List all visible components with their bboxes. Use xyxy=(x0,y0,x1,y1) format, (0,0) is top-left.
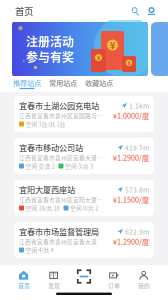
button[interactable]: 注册活动 xyxy=(12,20,148,78)
staticText: ¥1.1500/度 xyxy=(113,196,149,203)
staticText: 宜春市土湖公园充电站 xyxy=(19,101,99,110)
staticText: ¥ xyxy=(110,40,115,50)
staticText: ¥1.0000/度 xyxy=(113,112,149,119)
staticText: 宜春市移动公司站 xyxy=(19,143,83,152)
button[interactable]: 宜阳大厦西座站 xyxy=(14,180,154,216)
staticText: ¥1.2900/度 xyxy=(113,238,149,245)
button[interactable]: 搜索 xyxy=(131,6,140,15)
staticText: 常用站点 xyxy=(49,79,77,86)
staticText: 江西省宜春市袁州区宜园路与锦绣大道交叉口 xyxy=(19,112,106,118)
staticText: 江西省宜春市袁州区宜阳大厦西座停车场 xyxy=(19,196,106,202)
button[interactable]: 我的 xyxy=(129,270,159,288)
staticText: 622.9m xyxy=(125,228,149,235)
staticText: 注册活动 xyxy=(26,35,74,47)
staticText: 空闲 18/共 18 xyxy=(25,205,59,211)
staticText: ¥ xyxy=(127,60,130,65)
staticText: 首页 xyxy=(18,282,30,288)
staticText: 空闲 1台/共 1台 xyxy=(25,121,65,127)
button[interactable]: 推荐站点 xyxy=(9,79,45,89)
button[interactable]: 收藏站点 xyxy=(81,79,117,89)
staticText: 发现 xyxy=(48,282,60,288)
staticText: 首页 xyxy=(15,6,33,16)
staticText: 推荐站点 xyxy=(13,79,41,86)
button[interactable]: 宜春市市场监督管理局 xyxy=(14,222,154,258)
button[interactable]: 宜春市移动公司站 xyxy=(14,138,154,174)
button[interactable]: 订单 xyxy=(99,270,129,288)
staticText: 江西省宜春市袁州区宜春大道锦绣国际 xyxy=(19,154,106,160)
staticText: 订单 xyxy=(108,282,120,288)
staticText: 1.1km xyxy=(129,102,149,109)
staticText: ¥1.2900/度 xyxy=(113,154,149,161)
staticText: 空闲 交流 2 xyxy=(25,163,54,169)
staticText: 空闲 0/共 2 xyxy=(70,205,98,211)
staticText: 我的 xyxy=(138,282,150,288)
staticText: 宜春市市场监督管理局 xyxy=(19,227,99,236)
button[interactable]: 常用站点 xyxy=(45,79,81,89)
staticText: 573.8m xyxy=(125,186,149,193)
staticText: 参与有奖 xyxy=(26,50,74,63)
staticText: 宜阳大厦西座站 xyxy=(19,185,75,194)
staticText: 419.7m xyxy=(125,144,149,151)
staticText: 空闲 3/共 3 xyxy=(65,163,93,169)
button[interactable]: 定位 xyxy=(147,6,156,15)
button[interactable]: 发现 xyxy=(39,270,69,288)
button[interactable]: 宜春市土湖公园充电站 xyxy=(14,96,154,132)
staticText: ¥ xyxy=(97,55,100,60)
staticText: 江西省宜春市袁州区宜春大道 xyxy=(19,238,97,244)
staticText: 空闲 4/共 4 xyxy=(25,247,53,253)
staticText: 收藏站点 xyxy=(85,79,113,86)
button[interactable]: 扫一扫 xyxy=(69,269,99,290)
button[interactable]: 首页 xyxy=(9,270,39,288)
